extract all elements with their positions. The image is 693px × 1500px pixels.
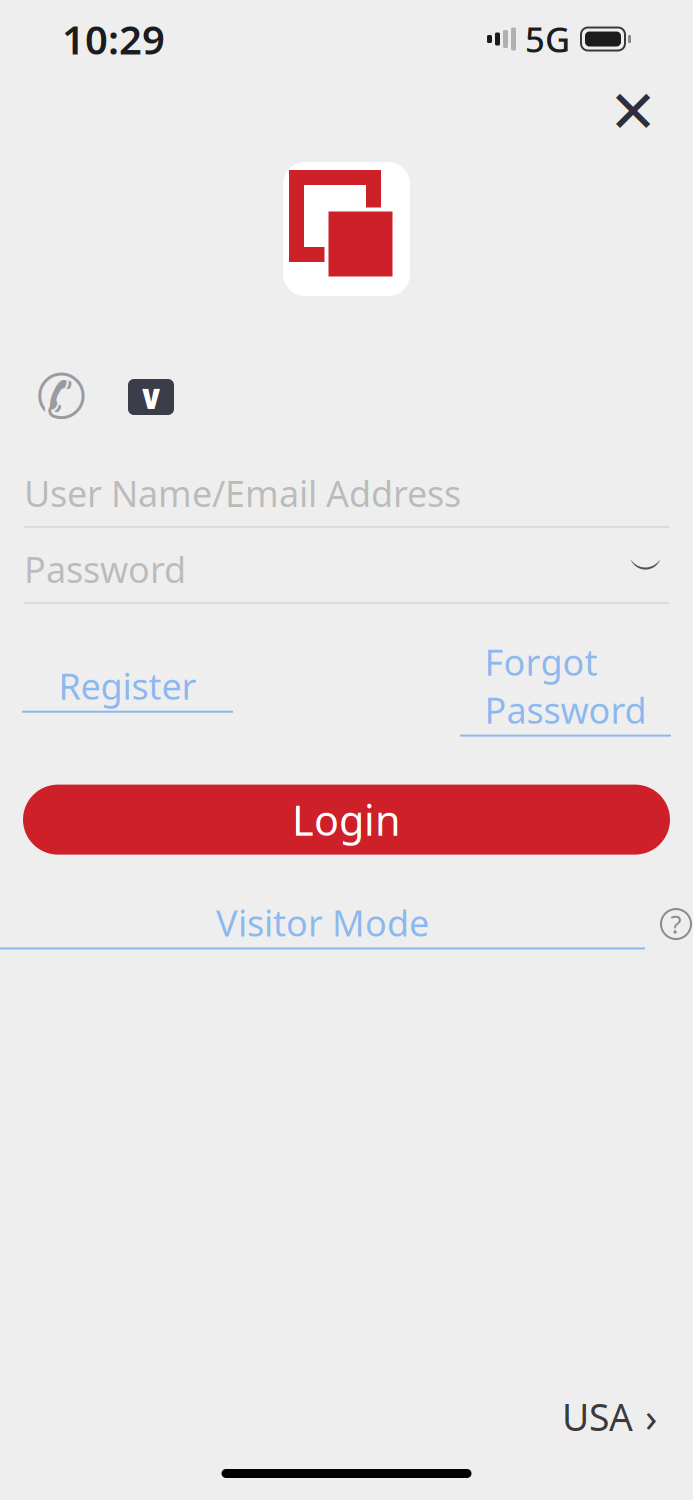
button[interactable]: Phone login — [38, 374, 84, 420]
staticText: Login — [292, 792, 401, 847]
button[interactable]: Visitor mode help — [659, 907, 693, 941]
staticText: Register — [58, 662, 196, 710]
staticText: Visitor Mode — [216, 899, 429, 946]
staticText: ✕ — [608, 79, 657, 145]
staticText: ? — [670, 907, 681, 941]
staticText: ︶ — [629, 548, 664, 590]
staticText: ✆ — [35, 362, 86, 432]
button[interactable]: Close — [607, 86, 659, 138]
button[interactable]: Forgot Password — [460, 638, 671, 737]
button[interactable]: Show password — [625, 554, 669, 584]
staticText: USA — [562, 1392, 633, 1441]
staticText: › — [645, 1390, 657, 1443]
button[interactable]: Email login — [128, 374, 174, 420]
button[interactable]: USA — [562, 1382, 657, 1451]
staticText: ∨ — [137, 377, 165, 417]
staticText: 5G — [525, 16, 570, 62]
staticText: Forgot Password — [484, 638, 646, 734]
staticText: Password — [24, 545, 186, 593]
button[interactable]: Register — [22, 662, 233, 713]
button[interactable]: Visitor Mode — [0, 899, 645, 949]
button[interactable]: Login — [23, 785, 670, 855]
staticText: User Name/Email Address — [24, 469, 461, 517]
staticText: 10:29 — [62, 12, 165, 65]
